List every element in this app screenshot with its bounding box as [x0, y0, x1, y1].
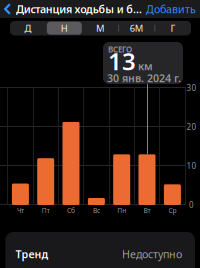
staticText: км [138, 59, 153, 73]
button[interactable]: Добавить [146, 2, 196, 16]
staticText: Пт [42, 206, 50, 215]
staticText: Дистанция ходьбы и б… [16, 2, 142, 16]
button[interactable]: М [82, 21, 119, 35]
staticText: ВСЕГО [108, 44, 132, 55]
staticText: Тренд [15, 247, 48, 261]
staticText: 30 янв. 2024 г. [107, 71, 181, 85]
button[interactable]: Д [10, 21, 46, 35]
staticText: Д [25, 22, 32, 34]
staticText: Пн [117, 206, 126, 215]
staticText: 0 [189, 200, 194, 210]
staticText: Добавить [146, 2, 196, 16]
staticText: Недоступно [122, 247, 182, 261]
staticText: Сб [67, 206, 75, 215]
staticText: 20 [186, 122, 196, 132]
staticText: Вс [93, 206, 100, 215]
staticText: 10 [186, 161, 196, 171]
staticText: 13 [108, 45, 136, 77]
staticText: Вт [143, 206, 150, 215]
staticText: Ср [168, 206, 176, 215]
staticText: Н [61, 22, 68, 34]
staticText: 6М [130, 22, 144, 34]
staticText: Г [170, 22, 175, 34]
button[interactable]: Тренд [5, 232, 195, 268]
button[interactable]: Г [155, 21, 191, 35]
button[interactable]: Н [46, 21, 82, 35]
staticText: 30 [186, 83, 196, 93]
button[interactable]: 6М [119, 21, 155, 35]
staticText: М [96, 22, 105, 34]
staticText: Чт [17, 206, 24, 215]
button[interactable]: Назад [3, 1, 12, 17]
